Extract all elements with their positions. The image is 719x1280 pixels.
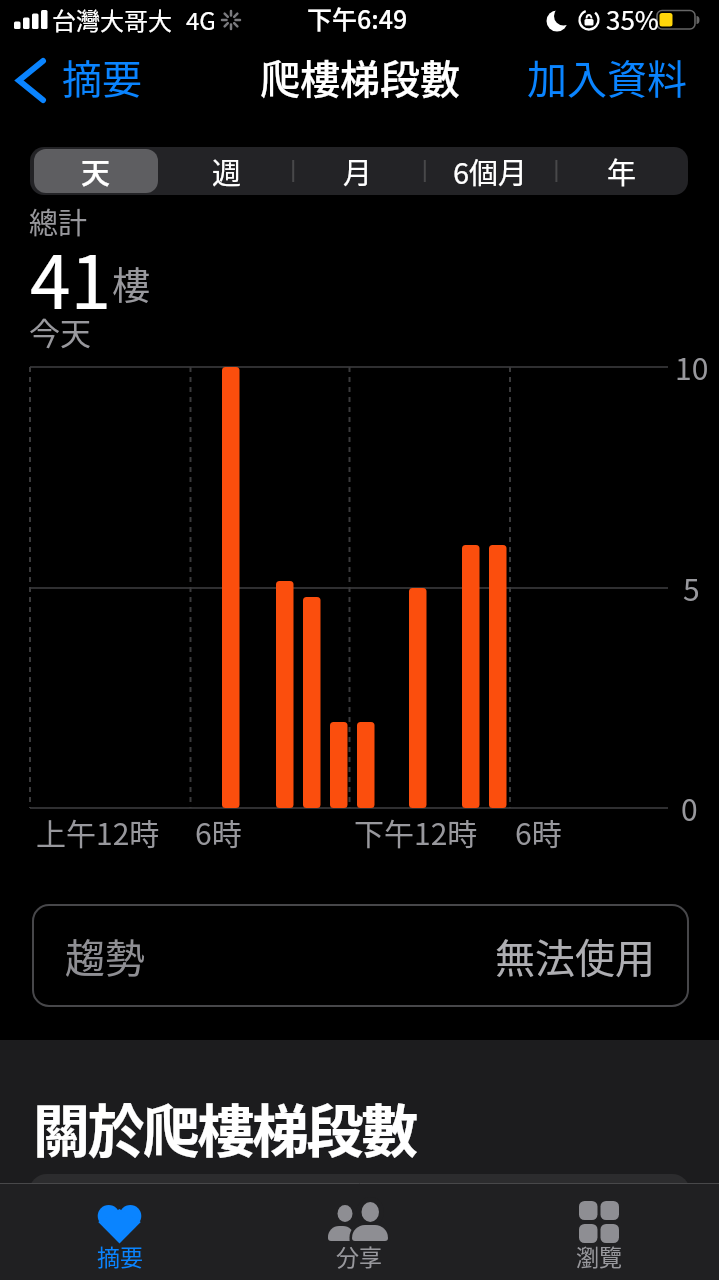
button[interactable]: 趨勢 [32,904,689,1007]
staticText: 41 [30,224,112,330]
staticText: 5 [683,566,700,609]
staticText: 加入資料 [527,48,687,106]
staticText: 天 [81,150,111,192]
staticText: 上午12時 [36,810,160,853]
staticText: 年 [607,150,637,192]
staticText: 趨勢 [65,927,145,985]
staticText: 摘要 [97,1239,143,1272]
staticText: 4G [186,2,216,37]
staticText: 6時 [515,810,562,853]
staticText: 今天 [29,309,91,354]
button[interactable]: 瀏覽 [479,1183,719,1280]
staticText: 月 [343,150,373,192]
button[interactable]: 分享 [239,1183,479,1280]
button[interactable]: 月 [292,147,424,195]
staticText: 分享 [336,1239,382,1272]
staticText: 總計 [29,200,88,242]
staticText: 摘要 [62,48,142,106]
staticText: 爬樓梯段數 [260,48,460,106]
button[interactable]: 6個月 [424,147,556,195]
staticText: 下午12時 [354,810,478,853]
button[interactable]: 天 [30,147,161,195]
staticText: 6時 [195,810,242,853]
staticText: 樓 [112,255,151,310]
button[interactable]: 週 [161,147,292,195]
button[interactable]: 摘要 [62,42,142,123]
staticText: 台灣大哥大 [52,2,172,37]
staticText: 瀏覽 [576,1239,622,1272]
staticText: 無法使用 [495,927,655,985]
staticText: 35% [606,0,659,38]
button[interactable]: 加入資料 [527,42,687,123]
staticText: 下午6:49 [307,0,408,36]
staticText: 6個月 [453,150,528,192]
staticText: 10 [675,345,709,388]
staticText: 0 [681,786,698,829]
button[interactable]: 摘要 [0,1183,239,1280]
staticText: 週 [212,150,242,192]
button[interactable] [29,1174,690,1280]
button[interactable]: 年 [556,147,688,195]
staticText: 關於爬樓梯段數 [33,1086,417,1169]
